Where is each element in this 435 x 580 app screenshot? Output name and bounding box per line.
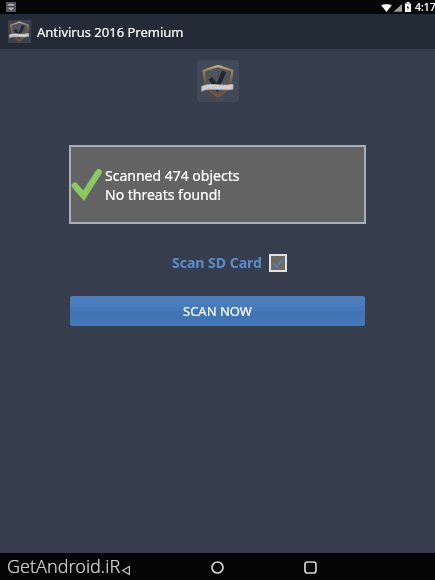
staticText: Antivirus 2016 Premium bbox=[37, 23, 184, 41]
button[interactable]: SCAN NOW bbox=[70, 296, 365, 326]
staticText: Scanned 474 objects bbox=[105, 166, 240, 185]
staticText: GetAndroid.iR bbox=[7, 554, 121, 579]
staticText: SCAN NOW bbox=[183, 302, 252, 320]
button[interactable]: Back bbox=[119, 563, 133, 577]
staticText: No threats found! bbox=[105, 185, 222, 204]
button[interactable]: Home bbox=[204, 554, 230, 580]
staticText: 4:17 bbox=[415, 0, 435, 14]
button[interactable]: Antivirus shield bbox=[197, 60, 239, 102]
button[interactable]: Scan SD Card bbox=[172, 253, 287, 272]
staticText: Scan SD Card bbox=[172, 253, 262, 272]
button[interactable]: Recents bbox=[297, 554, 323, 580]
